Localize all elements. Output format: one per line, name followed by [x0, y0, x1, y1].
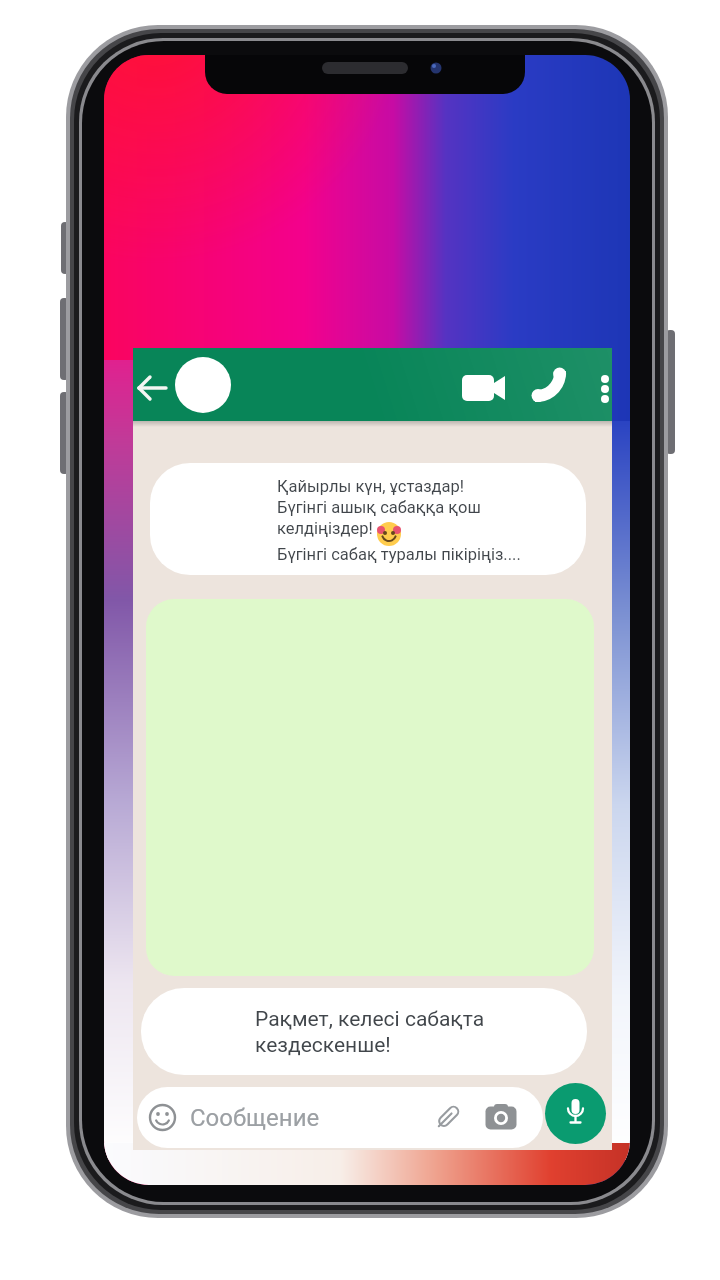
staticText: Рақмет, келесі сабақта: [255, 1007, 485, 1032]
staticText: Бүгінгі ашық сабаққа қош: [277, 498, 481, 517]
button[interactable]: [175, 357, 231, 413]
button[interactable]: [545, 1083, 606, 1144]
button[interactable]: [131, 366, 175, 410]
button[interactable]: [458, 366, 510, 410]
staticText: Қайырлы күн, ұстаздар!: [277, 477, 465, 496]
button[interactable]: [529, 366, 573, 410]
button[interactable]: [146, 1101, 179, 1134]
staticText: келдіңіздер!: [277, 519, 373, 538]
staticText: Бүгінгі сабақ туралы пікіріңіз....: [277, 545, 521, 564]
button[interactable]: [483, 1098, 520, 1135]
button[interactable]: [430, 1099, 466, 1135]
staticText: кездескенше!: [255, 1033, 391, 1058]
button[interactable]: [137, 1087, 543, 1148]
staticText: Сообщение: [190, 1104, 320, 1132]
button[interactable]: [591, 366, 619, 410]
